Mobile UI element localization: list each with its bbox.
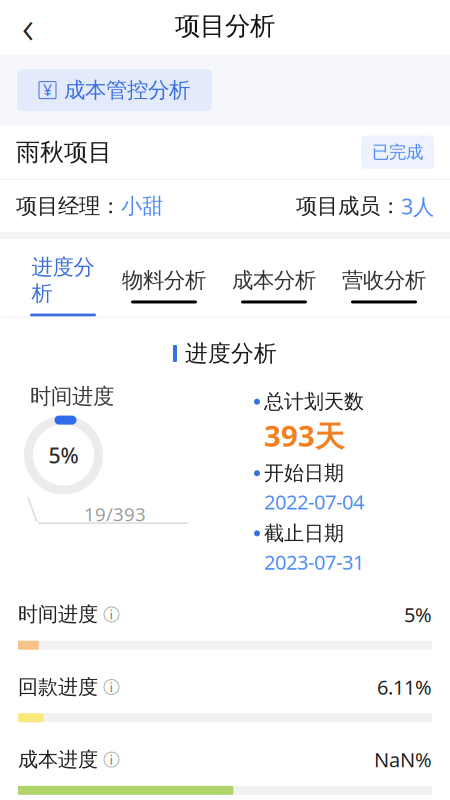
button[interactable]: 成本分析 — [219, 252, 329, 303]
button[interactable]: ¥ — [17, 69, 212, 111]
staticText: NaN% — [374, 746, 432, 773]
staticText: 时间进度 — [18, 602, 98, 627]
staticText: 2023-07-31 — [264, 549, 364, 575]
staticText: 营收分析 — [342, 267, 426, 293]
staticText: 项目分析 — [175, 11, 275, 42]
staticText: ¥ — [43, 79, 52, 101]
staticText: 5% — [48, 441, 78, 469]
staticText: 成本进度 — [18, 747, 98, 772]
staticText: 雨秋项目 — [16, 137, 112, 167]
staticText: 物料分析 — [122, 267, 206, 293]
staticText: 成本分析 — [232, 267, 316, 293]
staticText: 19/393 — [84, 502, 146, 526]
staticText: 2022-07-04 — [264, 488, 364, 515]
staticText: 6.11% — [377, 674, 432, 700]
staticText: 项目成员： — [296, 193, 401, 219]
staticText: i — [109, 606, 113, 623]
staticText: 进度分析 — [31, 254, 94, 307]
button[interactable]: 返回 — [6, 4, 50, 48]
staticText: 截止日期 — [264, 521, 344, 546]
staticText: i — [109, 751, 113, 768]
button[interactable]: 物料分析 — [109, 252, 219, 303]
staticText: 5% — [404, 601, 432, 628]
staticText: 开始日期 — [264, 461, 344, 485]
staticText: 项目经理： — [16, 193, 121, 219]
staticText: 进度分析 — [185, 340, 277, 367]
staticText: ‹ — [22, 0, 34, 56]
staticText: 成本管控分析 — [64, 77, 190, 103]
staticText: 时间进度 — [30, 383, 114, 410]
staticText: 总计划天数 — [264, 389, 364, 414]
staticText: 3人 — [401, 192, 434, 220]
staticText: 已完成 — [372, 141, 423, 163]
button[interactable]: 营收分析 — [329, 252, 439, 303]
staticText: 393天 — [264, 416, 344, 455]
button[interactable]: 进度分析 — [17, 239, 109, 317]
staticText: i — [109, 678, 113, 696]
staticText: 回款进度 — [18, 675, 98, 699]
staticText: 小甜 — [121, 193, 163, 219]
